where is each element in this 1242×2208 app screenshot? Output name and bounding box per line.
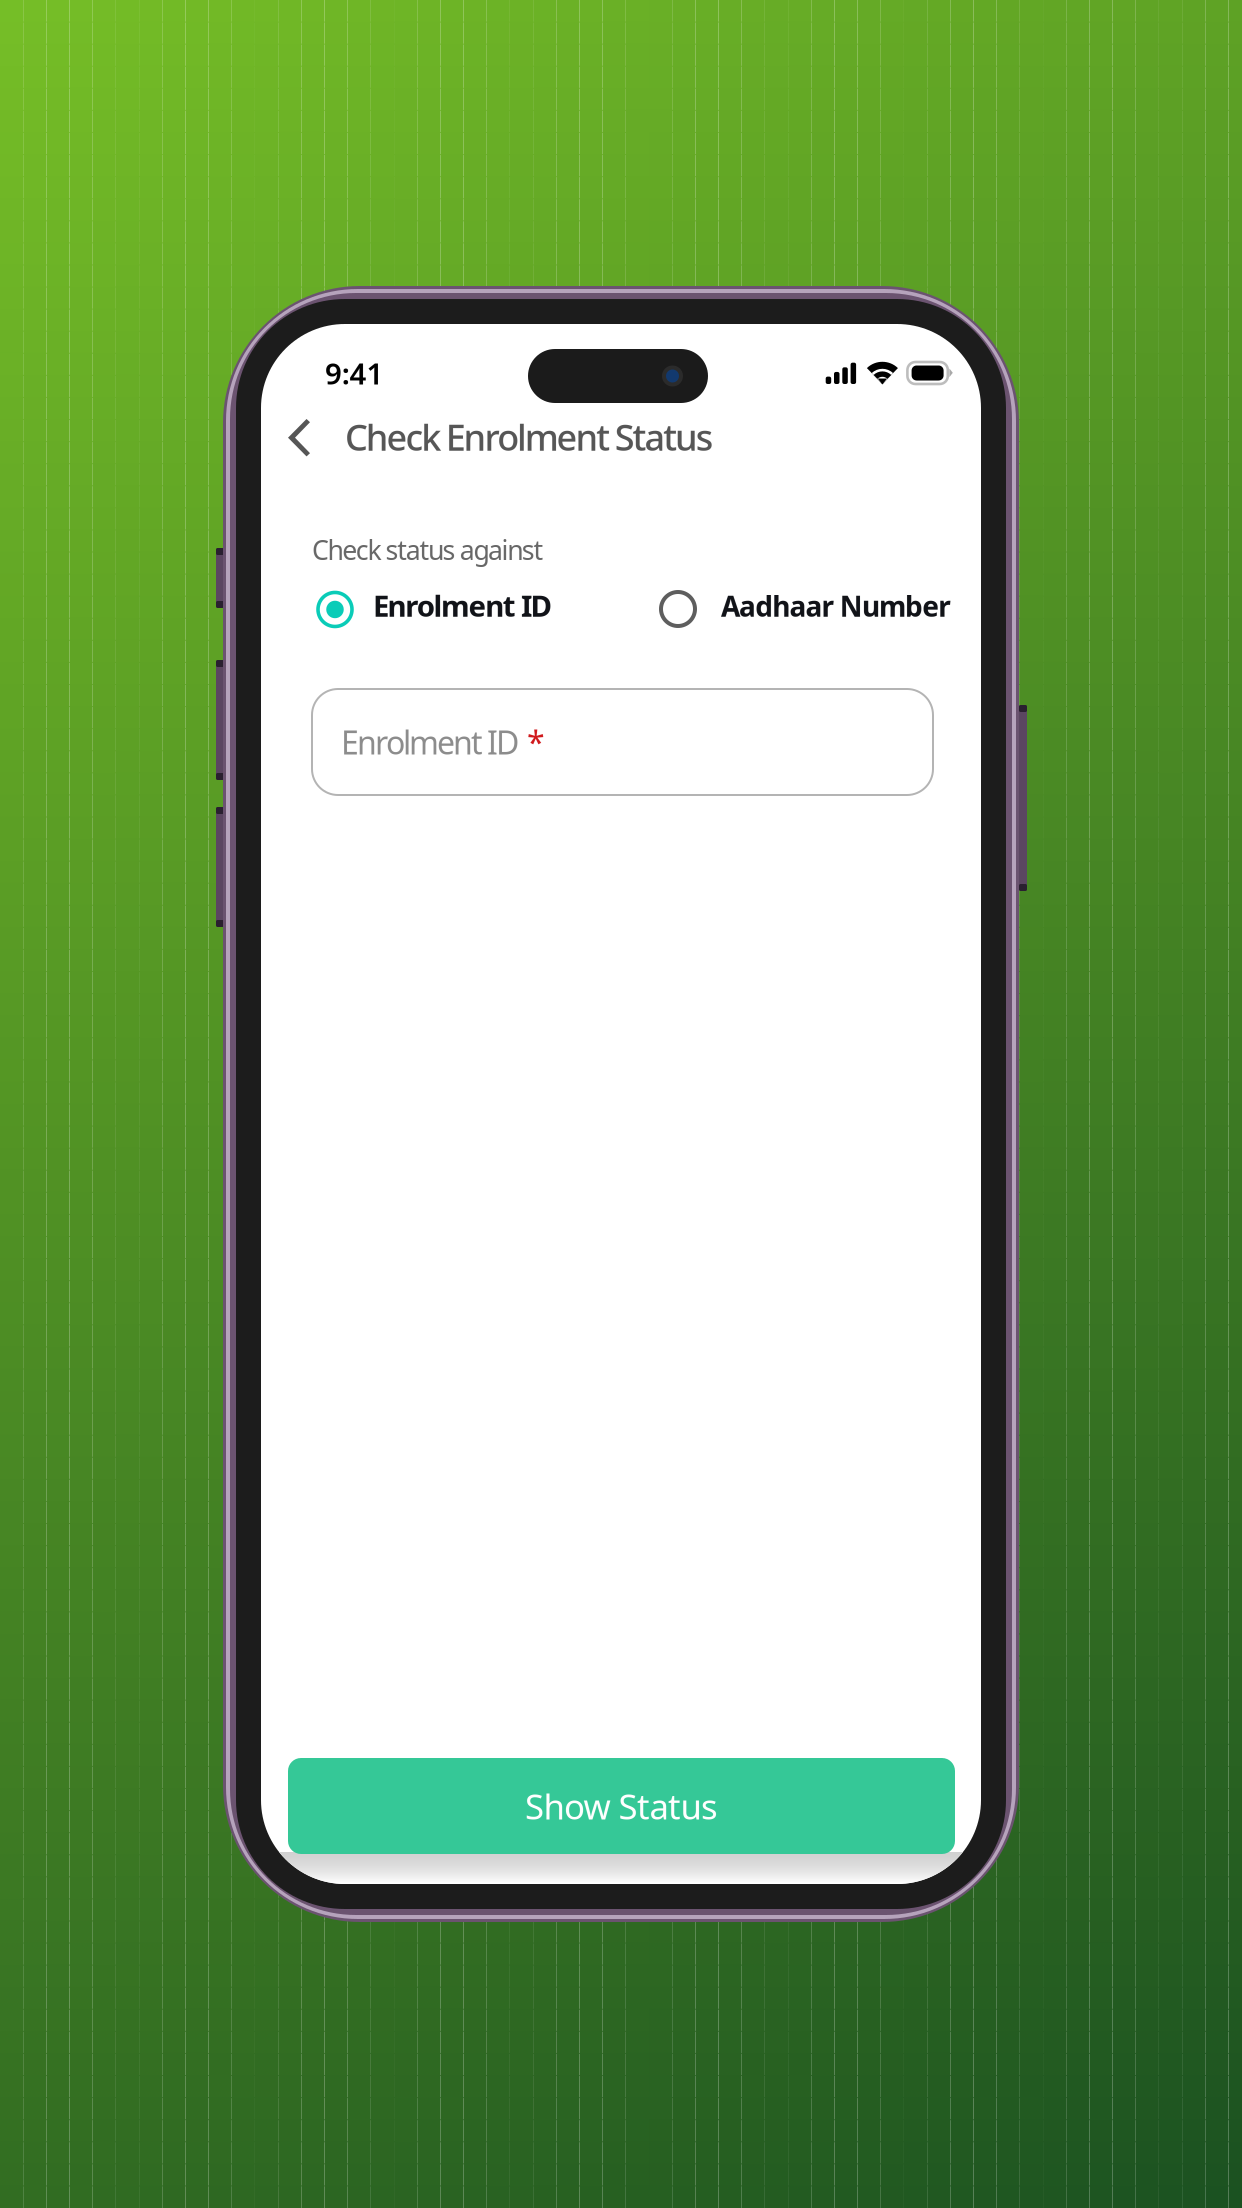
staticText: * (519, 721, 545, 763)
staticText: 9:41 (325, 353, 383, 392)
staticText: Show Status (525, 1783, 718, 1829)
staticText: Check Enrolment Status (345, 413, 713, 461)
button[interactable]: Back (274, 408, 324, 468)
staticText: Enrolment ID (373, 586, 552, 625)
staticText: Check status against (312, 532, 543, 567)
staticText: Aadhaar Number (721, 587, 951, 625)
button[interactable]: Enrolment ID (316, 585, 552, 634)
button[interactable]: Enrolment ID (312, 689, 933, 795)
button[interactable]: Aadhaar Number (659, 585, 951, 633)
button[interactable]: Show Status (288, 1758, 955, 1854)
staticText: Enrolment ID (341, 721, 519, 763)
